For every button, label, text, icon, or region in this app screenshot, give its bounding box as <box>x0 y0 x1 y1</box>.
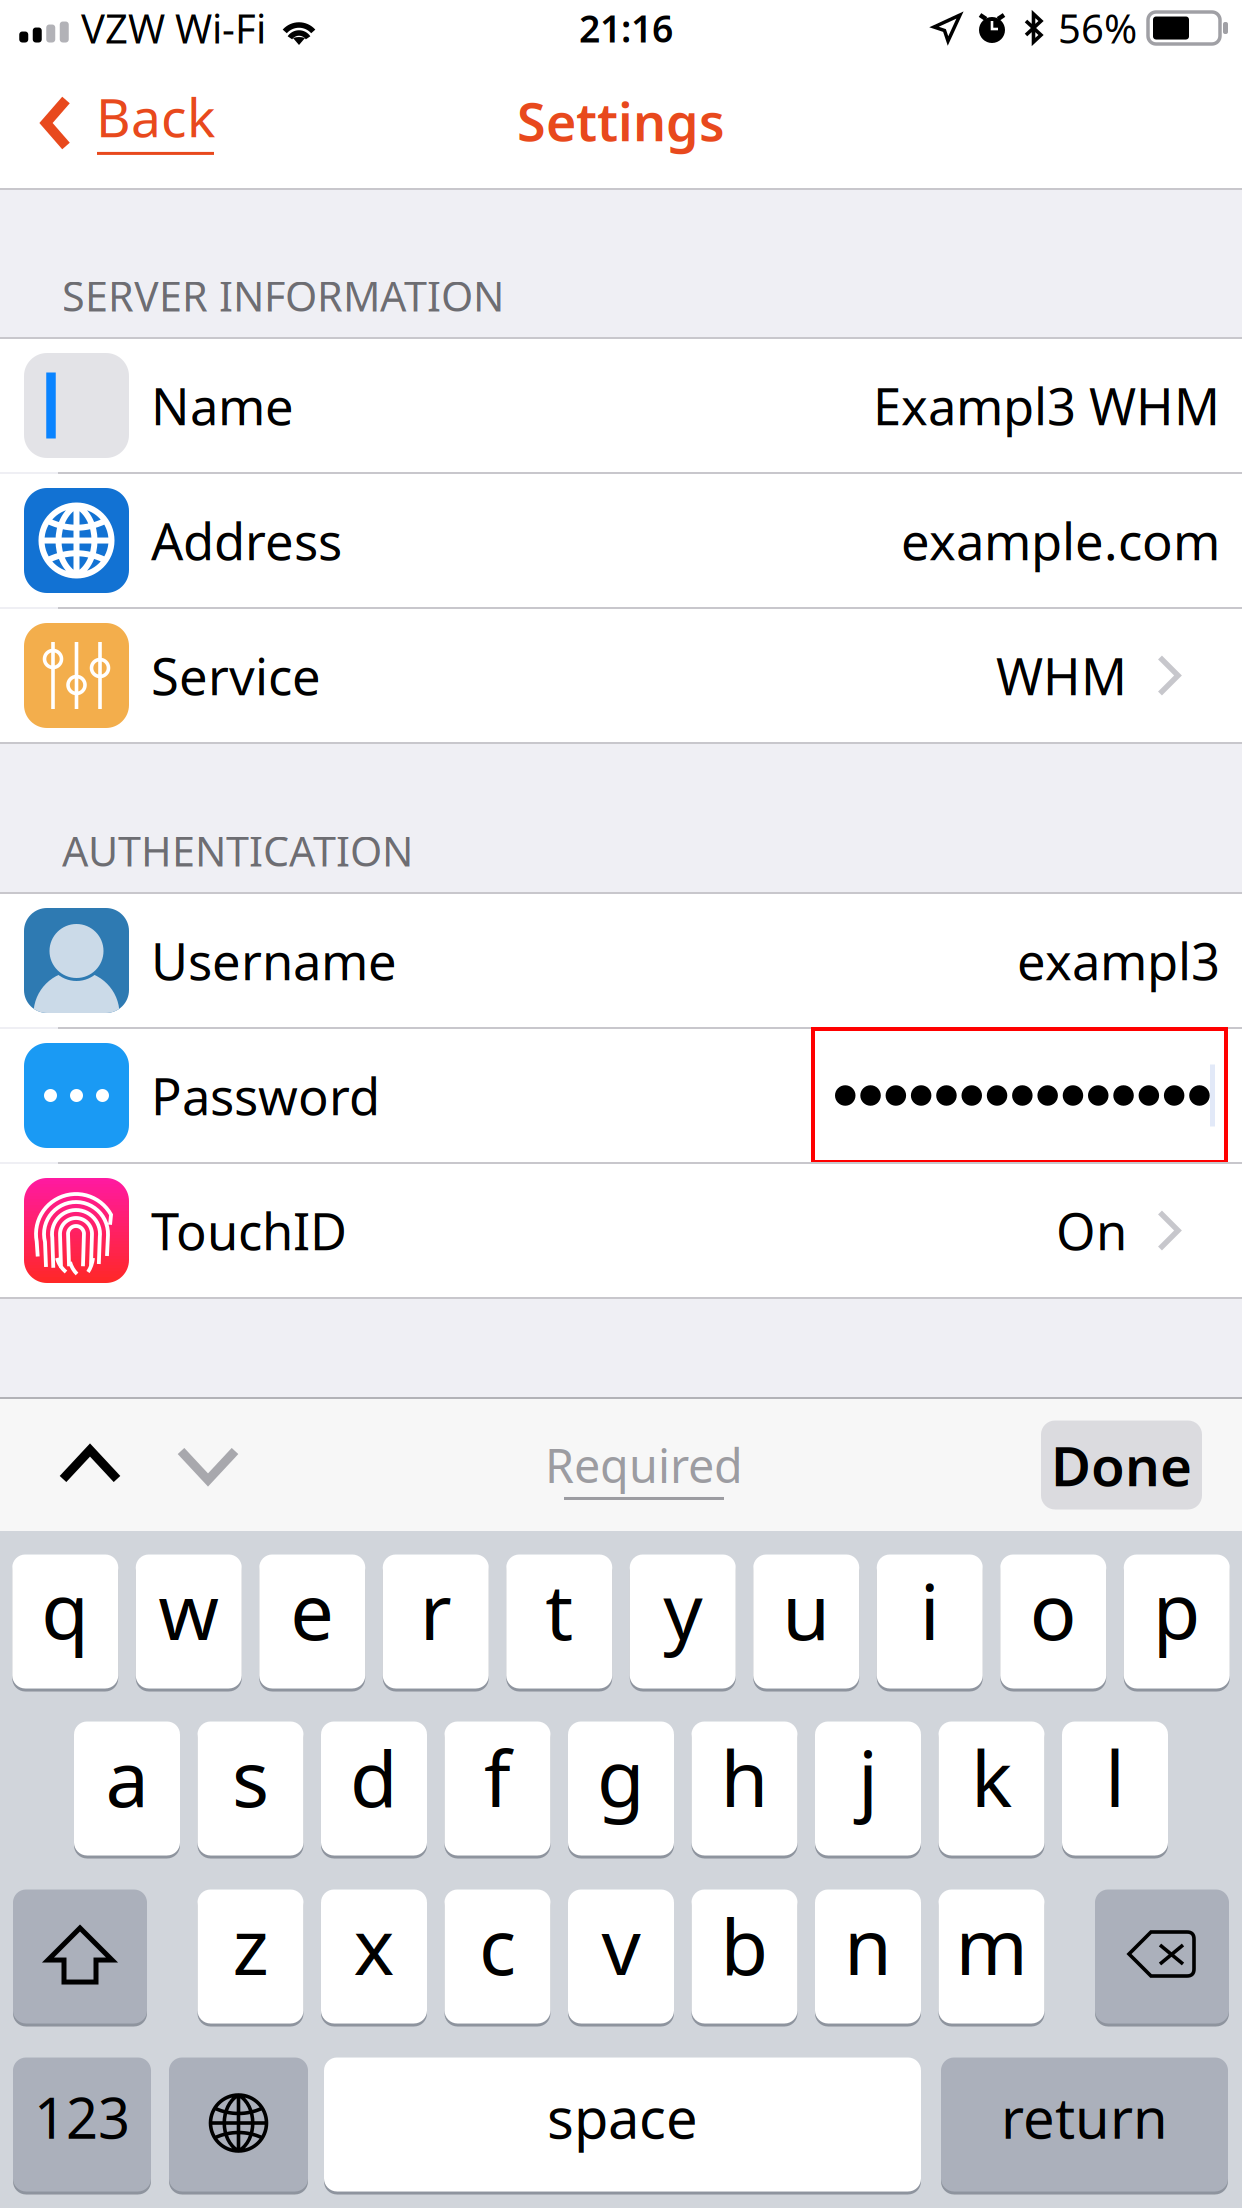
staticText: l <box>1105 1726 1125 1828</box>
staticText: d <box>350 1726 398 1828</box>
staticText: Password <box>151 1062 380 1129</box>
button[interactable]: 123 <box>13 2056 151 2193</box>
staticText: b <box>720 1894 768 1996</box>
staticText: f <box>484 1726 511 1828</box>
staticText: Address <box>151 507 342 574</box>
staticText: Exampl3 WHM <box>873 372 1220 439</box>
button[interactable]: h <box>691 1720 797 1857</box>
staticText: h <box>720 1726 768 1828</box>
button[interactable]: space <box>324 2056 921 2193</box>
staticText: o <box>1030 1559 1077 1661</box>
button[interactable]: b <box>691 1888 797 2025</box>
staticText: Required <box>545 1434 743 1496</box>
button[interactable]: i <box>877 1553 983 1690</box>
staticText: Name <box>151 372 294 439</box>
button[interactable]: l <box>1062 1720 1168 1857</box>
button[interactable]: a <box>74 1720 180 1857</box>
button[interactable]: Shift <box>13 1888 147 2025</box>
staticText: Username <box>151 927 397 994</box>
staticText: Back <box>96 81 215 152</box>
staticText: VZW Wi-Fi <box>81 1 266 54</box>
staticText: space <box>547 2080 698 2154</box>
button[interactable]: p <box>1124 1553 1230 1690</box>
staticText: n <box>844 1894 892 1996</box>
button[interactable]: q <box>12 1553 118 1690</box>
button[interactable]: m <box>938 1888 1044 2025</box>
button[interactable]: s <box>197 1720 303 1857</box>
staticText: r <box>420 1559 452 1661</box>
button[interactable]: Previous field <box>28 1399 152 1531</box>
staticText: e <box>290 1559 334 1661</box>
staticText: y <box>663 1559 702 1661</box>
staticText: 123 <box>34 2080 130 2154</box>
button[interactable]: Next field <box>152 1399 264 1531</box>
button[interactable]: Next keyboard <box>169 2056 308 2193</box>
button[interactable]: g <box>568 1720 674 1857</box>
button[interactable]: u <box>753 1553 859 1690</box>
staticText: return <box>1001 2080 1168 2154</box>
button[interactable]: TouchID <box>0 1164 1242 1297</box>
staticText: TouchID <box>151 1197 347 1264</box>
staticText: example.com <box>901 507 1220 574</box>
button[interactable]: f <box>444 1720 550 1857</box>
staticText: Settings <box>517 86 725 156</box>
button[interactable]: Back <box>0 58 239 188</box>
button[interactable]: x <box>321 1888 427 2025</box>
staticText: 56% <box>1058 1 1137 54</box>
button[interactable]: r <box>383 1553 489 1690</box>
staticText: s <box>232 1726 269 1828</box>
staticText: q <box>41 1559 89 1661</box>
button[interactable]: return <box>941 2056 1228 2193</box>
button[interactable]: d <box>321 1720 427 1857</box>
button[interactable]: v <box>568 1888 674 2025</box>
staticText: On <box>1056 1197 1127 1264</box>
staticText: i <box>920 1559 940 1661</box>
staticText: g <box>597 1726 645 1828</box>
button[interactable]: Address <box>0 474 1242 607</box>
staticText: j <box>858 1726 878 1828</box>
staticText: p <box>1153 1559 1201 1661</box>
button[interactable]: o <box>1000 1553 1106 1690</box>
staticText: w <box>158 1559 219 1661</box>
button[interactable]: j <box>815 1720 921 1857</box>
button[interactable]: Service <box>0 609 1242 742</box>
staticText: exampl3 <box>1017 927 1220 994</box>
staticText: Service <box>151 642 321 709</box>
button[interactable]: n <box>815 1888 921 2025</box>
button[interactable]: Done <box>1041 1420 1202 1509</box>
staticText: c <box>479 1894 516 1996</box>
staticText: z <box>232 1894 268 1996</box>
button[interactable]: t <box>506 1553 612 1690</box>
staticText: WHM <box>996 642 1127 709</box>
staticText: 21:16 <box>579 3 673 53</box>
staticText: a <box>105 1726 148 1828</box>
staticText: x <box>353 1894 394 1996</box>
button[interactable]: z <box>197 1888 303 2025</box>
button[interactable]: Delete <box>1095 1888 1229 2025</box>
button[interactable]: w <box>136 1553 242 1690</box>
staticText: Done <box>1051 1429 1192 1501</box>
button[interactable]: k <box>938 1720 1044 1857</box>
button[interactable]: Username <box>0 894 1242 1027</box>
staticText: SERVER INFORMATION <box>62 268 504 323</box>
button[interactable]: Name <box>0 339 1242 472</box>
button[interactable]: c <box>444 1888 550 2025</box>
button[interactable]: y <box>630 1553 736 1690</box>
staticText: u <box>782 1559 830 1661</box>
staticText: k <box>971 1726 1012 1828</box>
staticText: v <box>601 1894 640 1996</box>
button[interactable]: e <box>259 1553 365 1690</box>
staticText: t <box>545 1559 573 1661</box>
staticText: AUTHENTICATION <box>62 823 413 878</box>
staticText: m <box>955 1894 1027 1996</box>
button[interactable]: Password <box>0 1029 1242 1162</box>
